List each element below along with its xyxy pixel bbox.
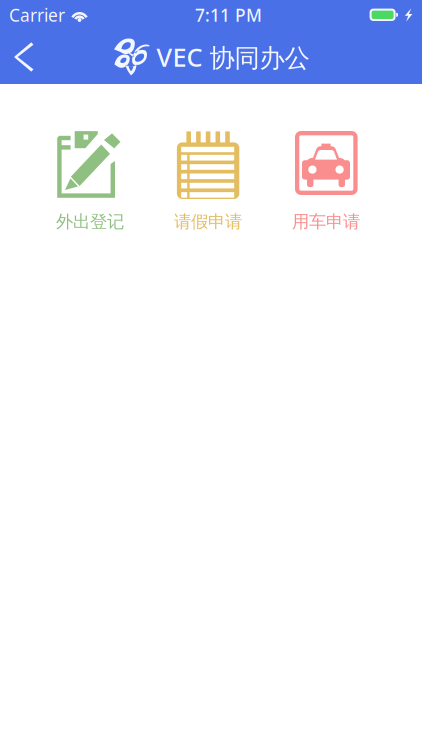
button[interactable]: 用车申请 — [267, 129, 385, 232]
button[interactable]: 请假申请 — [149, 129, 267, 232]
staticText: 请假申请 — [174, 211, 242, 232]
staticText: Carrier — [9, 3, 65, 26]
staticText: 用车申请 — [292, 211, 360, 232]
staticText: VEC 协同办公 — [156, 40, 309, 74]
button[interactable]: Back — [0, 30, 48, 84]
staticText: 外出登记 — [56, 211, 124, 232]
button[interactable]: 外出登记 — [31, 129, 149, 232]
staticText: 7:11 PM — [195, 3, 262, 26]
